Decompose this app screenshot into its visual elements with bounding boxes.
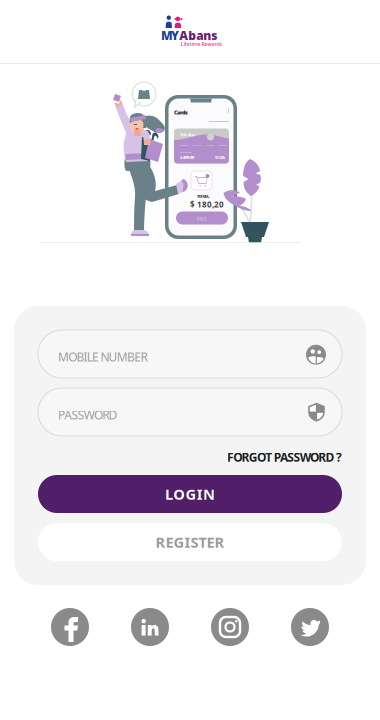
staticText: PAY	[196, 215, 207, 223]
button[interactable]: LinkedIn	[131, 608, 169, 646]
button[interactable]: Instagram	[211, 608, 249, 646]
staticText: TOTAL	[197, 193, 209, 199]
staticText: 7th Ave	[180, 132, 195, 137]
staticText: Cards	[174, 109, 188, 116]
button[interactable]: REGISTER	[38, 523, 342, 561]
staticText: Y	[171, 27, 179, 43]
staticText: MOBILE NUMBER	[58, 349, 147, 365]
staticText: M	[161, 27, 173, 43]
button[interactable]: MOBILE NUMBER	[38, 330, 342, 378]
button[interactable]: PASSWORD	[38, 388, 342, 436]
button[interactable]: Twitter	[291, 608, 329, 646]
staticText: LOGIN	[165, 484, 215, 504]
staticText: REGISTER	[155, 532, 224, 552]
staticText: 3.400,00	[180, 154, 194, 160]
staticText: $ 180,20	[190, 199, 224, 210]
staticText: Lifetime Rewards	[180, 40, 222, 48]
button[interactable]: LOGIN	[38, 475, 342, 513]
staticText: VISA	[215, 154, 225, 160]
button[interactable]: Facebook	[51, 608, 89, 646]
staticText: PASSWORD	[58, 407, 117, 423]
staticText: Abans	[179, 27, 217, 43]
staticText: FORGOT PASSWORD ?	[227, 449, 342, 465]
button[interactable]: FORGOT PASSWORD ?	[38, 446, 342, 468]
